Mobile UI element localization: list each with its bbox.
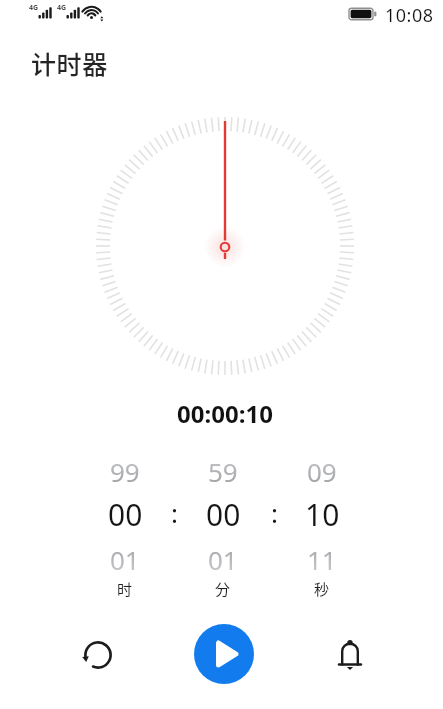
button[interactable]	[326, 629, 374, 677]
staticText: 09	[307, 454, 337, 489]
staticText: :	[171, 495, 178, 530]
button[interactable]: 99	[80, 450, 170, 605]
button[interactable]	[194, 624, 254, 684]
staticText: 时	[117, 578, 133, 600]
staticText: 00	[108, 494, 143, 535]
staticText: 00	[206, 494, 241, 535]
button[interactable]: 59	[178, 450, 268, 605]
staticText: 01	[208, 542, 238, 577]
staticText: 99	[110, 454, 140, 489]
staticText: 4G	[29, 3, 39, 13]
staticText: 秒	[314, 578, 330, 600]
staticText: 计时器	[31, 45, 108, 81]
staticText: :	[271, 495, 278, 530]
staticText: 01	[110, 542, 140, 577]
button[interactable]: 09	[277, 450, 367, 605]
staticText: 4G	[57, 3, 67, 13]
staticText: 10	[305, 494, 340, 535]
staticText: 10:08	[385, 3, 434, 28]
staticText: 00:00:10	[177, 397, 273, 430]
staticText: 分	[215, 578, 231, 600]
button[interactable]	[74, 631, 122, 679]
staticText: 11	[307, 542, 337, 577]
staticText: 59	[208, 454, 238, 489]
